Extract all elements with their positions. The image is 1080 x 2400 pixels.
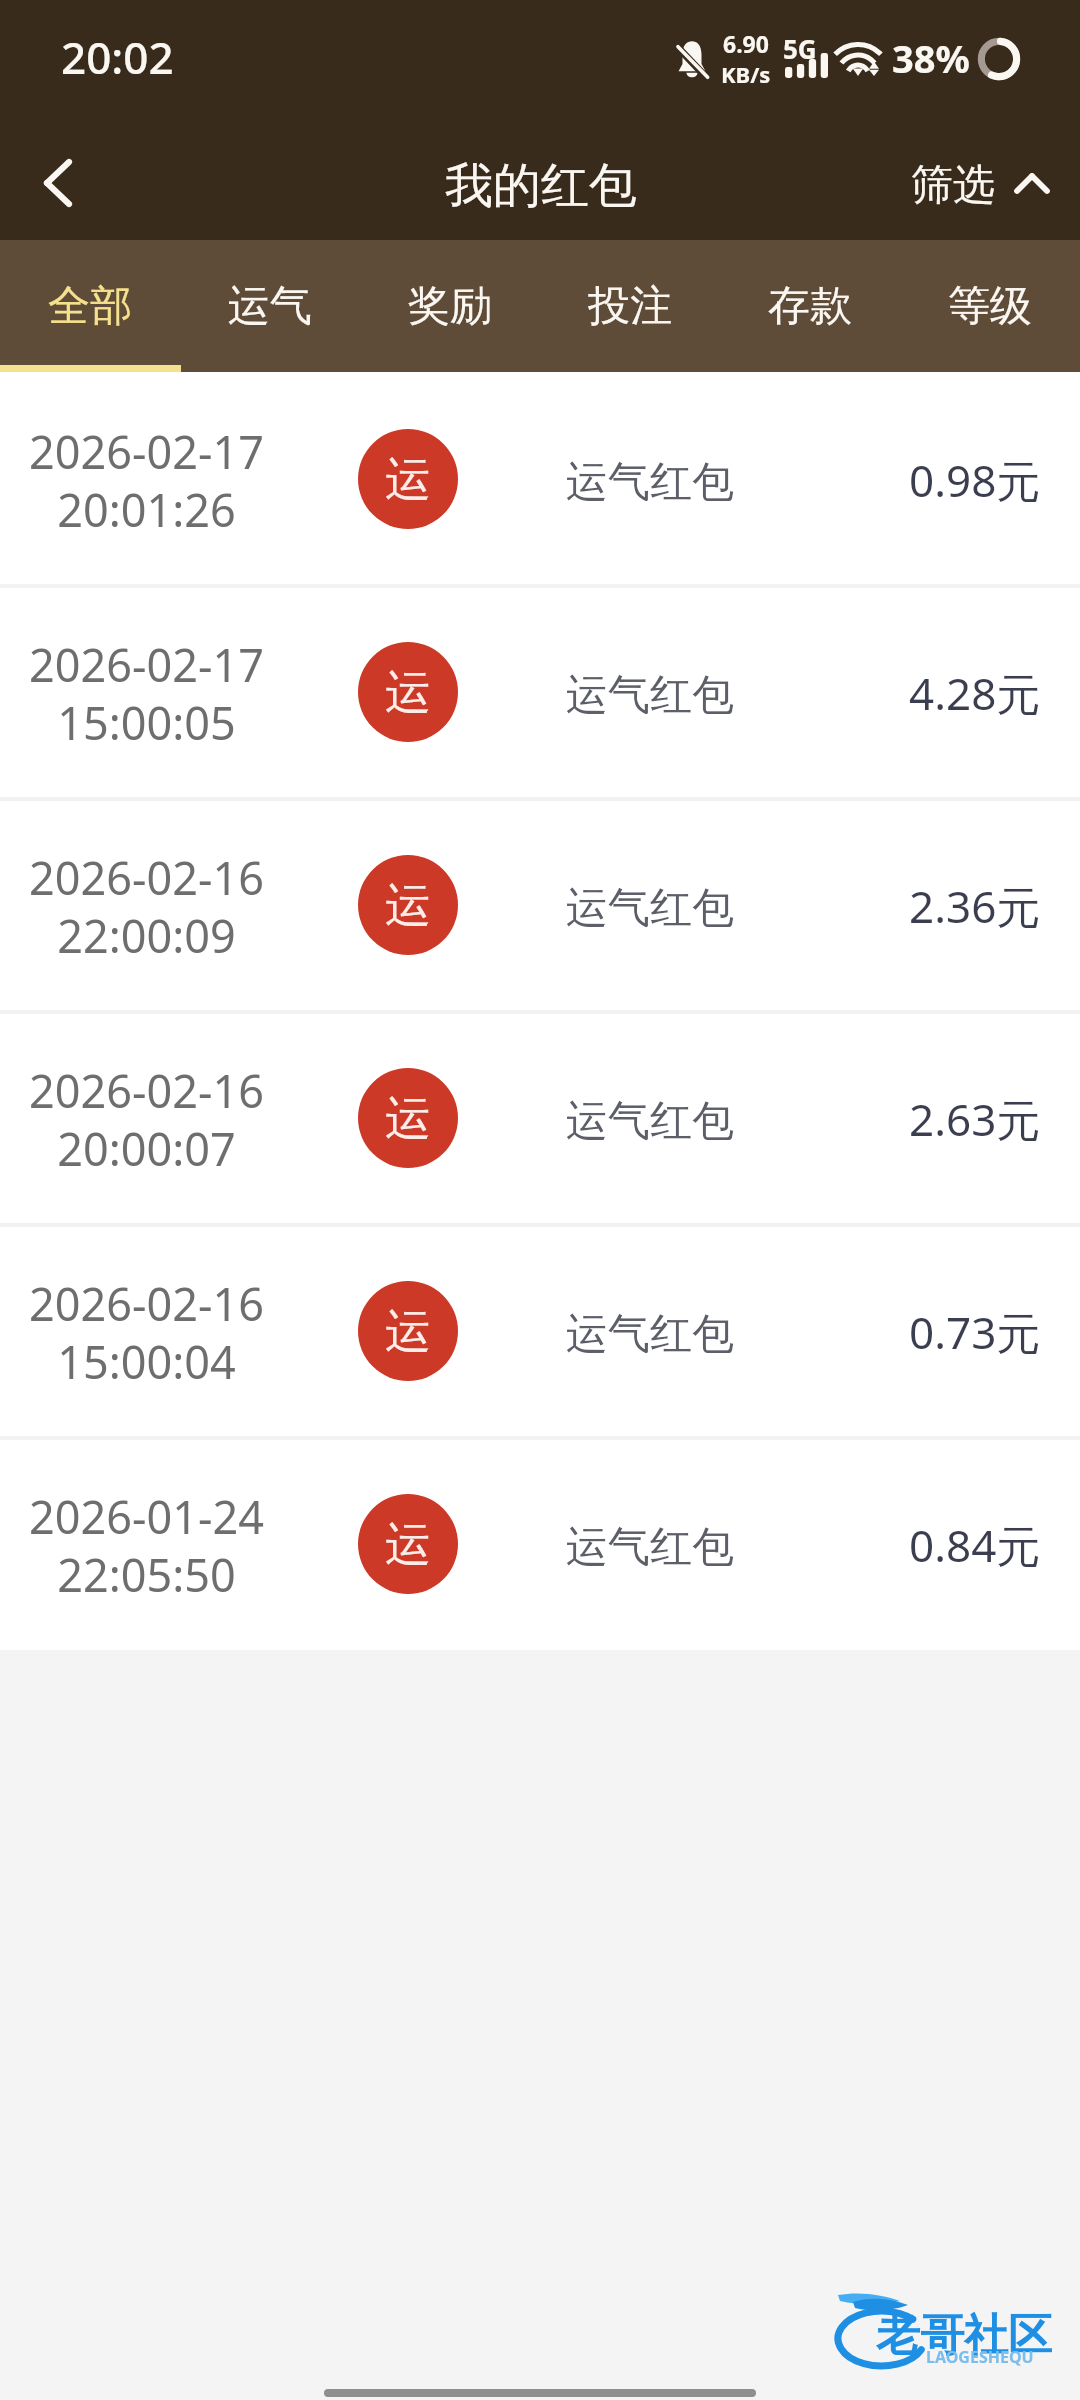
staticText: 2026-02-17 bbox=[29, 421, 264, 482]
button[interactable]: 2026-02-17 bbox=[0, 585, 1080, 798]
staticText: 我的红包 bbox=[445, 156, 637, 216]
staticText: 运 bbox=[385, 451, 431, 509]
staticText: 运 bbox=[385, 664, 431, 722]
staticText: 2026-02-16 bbox=[29, 847, 264, 908]
staticText: LAOGESHEQU bbox=[926, 2346, 1034, 2368]
button[interactable]: Back bbox=[0, 120, 118, 240]
staticText: 运 bbox=[385, 877, 431, 935]
staticText: 老哥社区 bbox=[876, 2308, 1052, 2363]
staticText: 存款 bbox=[768, 280, 852, 333]
button[interactable]: 存款 bbox=[720, 240, 900, 372]
button[interactable]: 2026-02-16 bbox=[0, 1011, 1080, 1224]
staticText: 运气红包 bbox=[566, 456, 734, 509]
staticText: 奖励 bbox=[408, 280, 492, 333]
staticText: 0.98元 bbox=[909, 450, 1041, 510]
button[interactable]: 运气 bbox=[180, 240, 360, 372]
staticText: 22:00:09 bbox=[57, 905, 236, 966]
staticText: 运气 bbox=[228, 280, 312, 333]
staticText: 2026-02-16 bbox=[29, 1060, 264, 1121]
staticText: 运 bbox=[385, 1516, 431, 1574]
button[interactable]: 等级 bbox=[900, 240, 1080, 372]
staticText: 0.84元 bbox=[909, 1515, 1041, 1575]
staticText: 2.36元 bbox=[909, 876, 1041, 936]
button[interactable]: 2026-01-24 bbox=[0, 1437, 1080, 1650]
staticText: 运气红包 bbox=[566, 1521, 734, 1574]
button[interactable]: 投注 bbox=[540, 240, 720, 372]
button[interactable]: 全部 bbox=[0, 240, 180, 372]
staticText: 6.90 bbox=[723, 28, 769, 59]
staticText: 15:00:04 bbox=[57, 1331, 236, 1392]
staticText: 2026-01-24 bbox=[29, 1486, 264, 1547]
staticText: 运 bbox=[385, 1303, 431, 1361]
button[interactable]: 奖励 bbox=[360, 240, 540, 372]
staticText: 等级 bbox=[948, 280, 1032, 333]
staticText: KB/s bbox=[721, 59, 771, 89]
button[interactable]: 2026-02-16 bbox=[0, 1224, 1080, 1437]
staticText: 20:02 bbox=[61, 27, 174, 87]
staticText: 2026-02-17 bbox=[29, 634, 264, 695]
button[interactable]: 2026-02-16 bbox=[0, 798, 1080, 1011]
staticText: 筛选 bbox=[911, 159, 995, 212]
staticText: 20:01:26 bbox=[57, 479, 236, 540]
staticText: 运 bbox=[385, 1090, 431, 1148]
staticText: 20:00:07 bbox=[57, 1118, 236, 1179]
button[interactable]: 筛选 bbox=[893, 134, 1080, 227]
staticText: 0.73元 bbox=[909, 1302, 1041, 1362]
staticText: 运气红包 bbox=[566, 669, 734, 722]
staticText: 运气红包 bbox=[566, 882, 734, 935]
button[interactable]: 2026-02-17 bbox=[0, 372, 1080, 585]
staticText: 2.63元 bbox=[909, 1089, 1041, 1149]
staticText: 4.28元 bbox=[909, 663, 1041, 723]
staticText: 运气红包 bbox=[566, 1095, 734, 1148]
staticText: 投注 bbox=[588, 280, 672, 333]
staticText: 38% bbox=[892, 32, 970, 84]
staticText: 全部 bbox=[48, 280, 132, 333]
staticText: 2026-02-16 bbox=[29, 1273, 264, 1334]
staticText: 5G bbox=[783, 31, 817, 66]
staticText: 运气红包 bbox=[566, 1308, 734, 1361]
staticText: 22:05:50 bbox=[57, 1544, 236, 1605]
staticText: 15:00:05 bbox=[57, 692, 236, 753]
